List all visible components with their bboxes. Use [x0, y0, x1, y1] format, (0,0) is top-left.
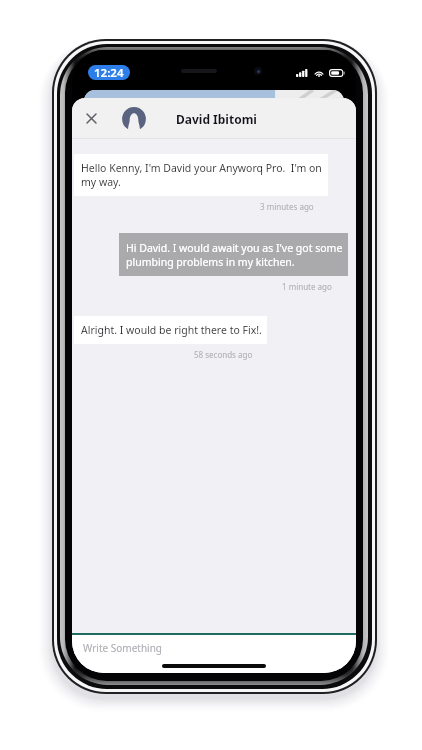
staticText: 12:24 [94, 65, 124, 80]
staticText: Alright. I would be right there to Fix!. [81, 323, 262, 337]
button[interactable]: Hi David. I would await you as I've got … [119, 233, 348, 276]
staticText: David Ibitomi [176, 111, 257, 127]
staticText: Hello Kenny, I'm David your Anyworq Pro.… [81, 161, 323, 189]
button[interactable]: Hello Kenny, I'm David your Anyworq Pro.… [74, 154, 328, 196]
staticText: 58 seconds ago [194, 349, 253, 360]
staticText: Write Something [83, 641, 162, 655]
staticText: 1 minute ago [282, 281, 332, 292]
button[interactable]: Alright. I would be right there to Fix!. [74, 316, 267, 344]
button[interactable]: Close chat [78, 105, 105, 132]
staticText: Hi David. I would await you as I've got … [126, 241, 343, 269]
staticText: 3 minutes ago [260, 201, 314, 212]
